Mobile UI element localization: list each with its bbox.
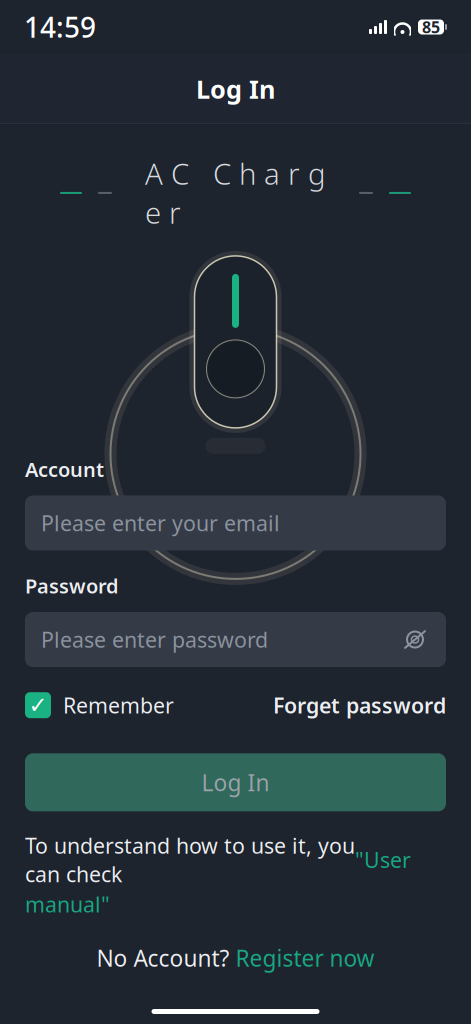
staticText: To understand how to use it, you can che…	[25, 831, 355, 888]
staticText: Remember	[63, 691, 174, 719]
button[interactable]: Show password	[390, 613, 430, 665]
staticText: "User	[355, 845, 411, 874]
staticText: Forget password	[273, 691, 446, 719]
staticText: Account	[25, 456, 104, 482]
staticText: ✓	[28, 692, 47, 718]
staticText: 14:59	[24, 8, 96, 46]
staticText: 85	[422, 16, 440, 38]
staticText: Please enter your email	[41, 509, 280, 537]
staticText: Register now	[235, 943, 374, 973]
button[interactable]: ✓	[25, 685, 174, 725]
staticText: Log In	[196, 72, 275, 106]
button[interactable]: Log In	[25, 753, 446, 811]
staticText: Password	[25, 572, 119, 599]
staticText: manual"	[25, 890, 110, 918]
staticText: Please enter password	[41, 625, 268, 654]
button[interactable]: No Account?	[96, 935, 374, 981]
staticText: Log In	[201, 767, 269, 797]
button[interactable]: To understand how to use it, you can che…	[25, 831, 446, 918]
button[interactable]: Forget password	[273, 685, 446, 725]
staticText: No Account?	[96, 943, 229, 973]
staticText: A C C h a r g e r	[145, 154, 326, 232]
